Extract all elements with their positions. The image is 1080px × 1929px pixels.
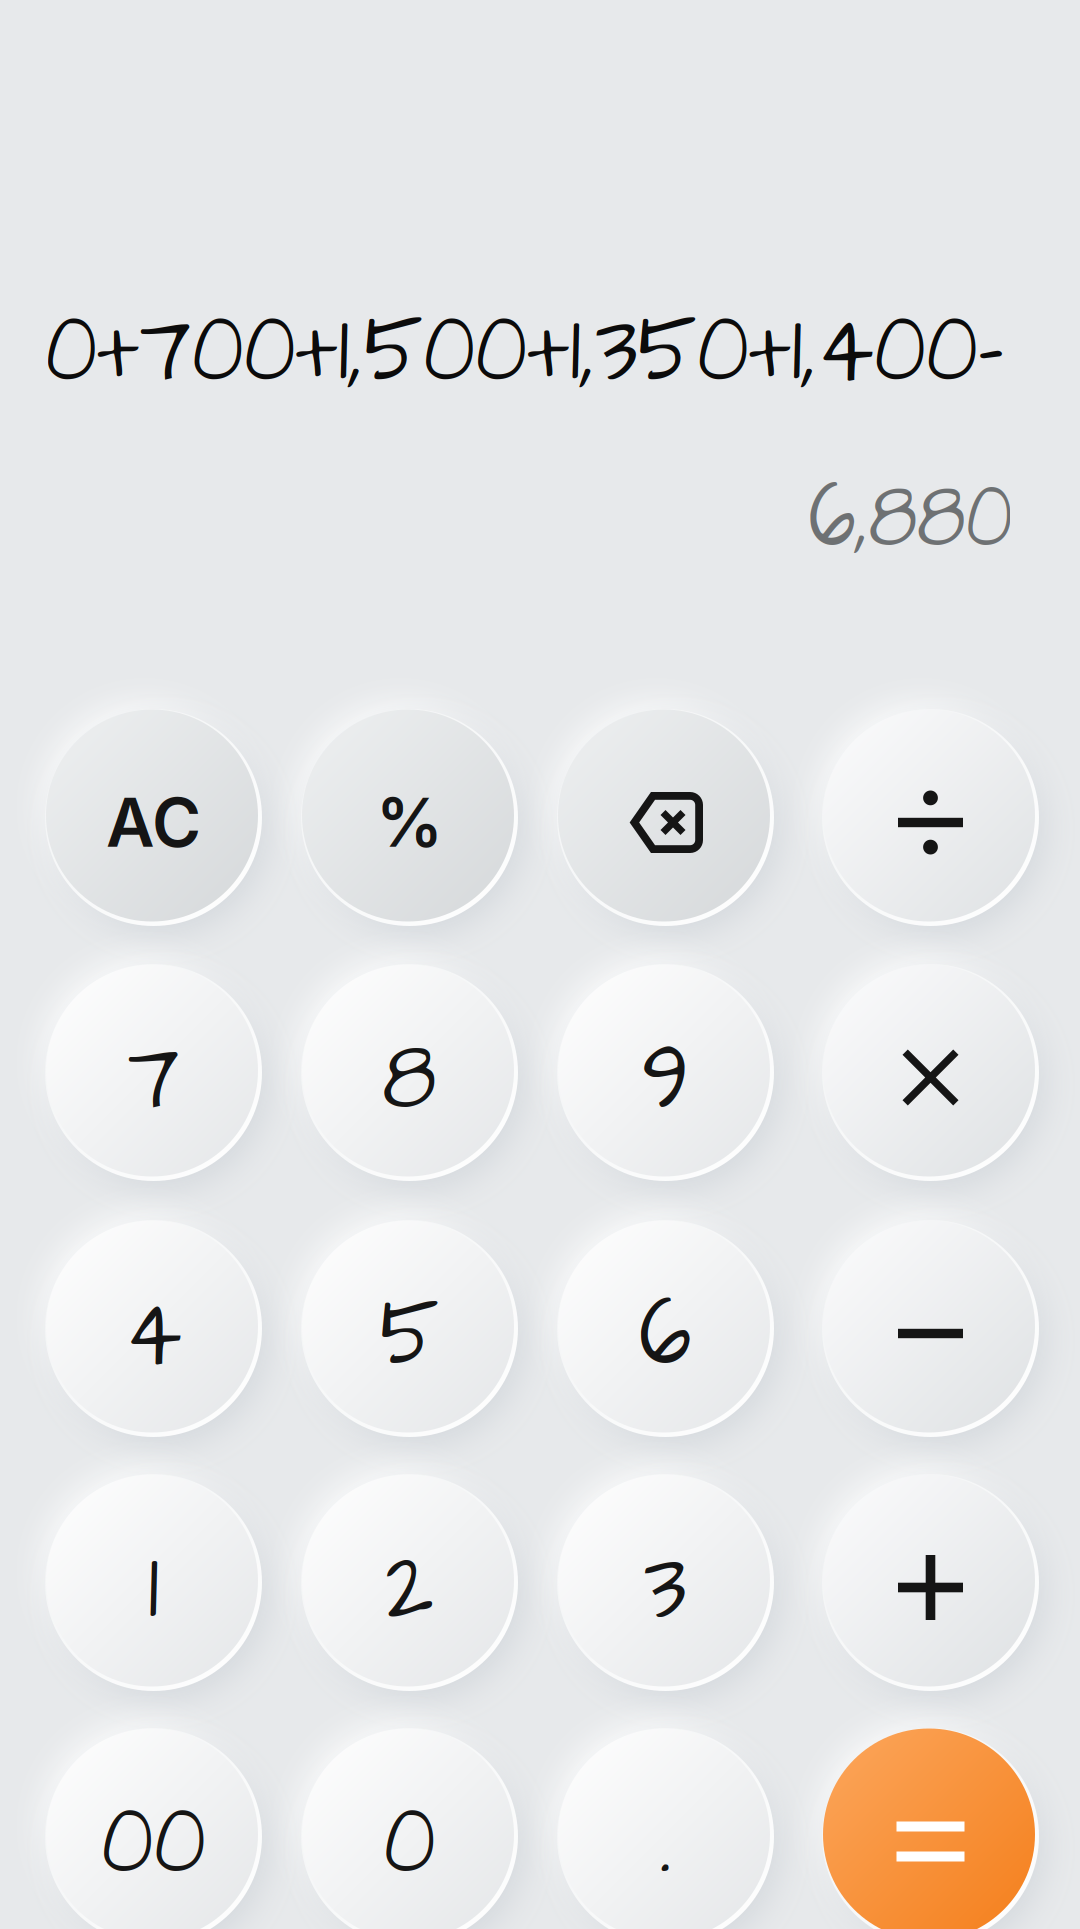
staticText: 6	[633, 1263, 697, 1404]
button[interactable]: 6	[557, 1220, 774, 1437]
staticText: .	[658, 1771, 672, 1912]
staticText: 4	[119, 1263, 188, 1404]
button[interactable]: Subtract	[822, 1220, 1039, 1437]
staticText: 5	[373, 1263, 445, 1404]
staticText: 7	[122, 1007, 184, 1148]
staticText: 00	[89, 1771, 217, 1912]
button[interactable]: Decimal point	[557, 1728, 774, 1929]
button[interactable]: 7	[45, 964, 262, 1181]
staticText: 1	[147, 1517, 160, 1658]
button[interactable]: 5	[301, 1220, 518, 1437]
button[interactable]: Double zero	[45, 1728, 262, 1929]
staticText: 9	[636, 1007, 694, 1148]
button[interactable]: 0	[301, 1728, 518, 1929]
button[interactable]: 1	[45, 1474, 262, 1691]
button[interactable]: Add	[822, 1474, 1039, 1691]
button[interactable]: Percent	[301, 709, 518, 926]
staticText: %	[376, 782, 443, 863]
staticText: AC	[106, 782, 201, 863]
button[interactable]: All clear	[45, 709, 262, 926]
button[interactable]: Multiply	[822, 964, 1039, 1181]
button[interactable]: 9	[557, 964, 774, 1181]
button[interactable]: Divide	[822, 709, 1039, 926]
staticText: 6,880	[751, 450, 1013, 584]
button[interactable]: Backspace	[557, 709, 774, 926]
button[interactable]: 4	[45, 1220, 262, 1437]
button[interactable]: 3	[557, 1474, 774, 1691]
staticText: 8	[376, 1007, 442, 1148]
button[interactable]: Equals	[822, 1728, 1039, 1929]
staticText: 2	[380, 1517, 438, 1658]
button[interactable]: 2	[301, 1474, 518, 1691]
staticText: 0+700+1,500+1,350+1,400-	[45, 280, 1080, 419]
staticText: 3	[639, 1517, 691, 1658]
button[interactable]: 8	[301, 964, 518, 1181]
staticText: 0	[377, 1771, 441, 1912]
